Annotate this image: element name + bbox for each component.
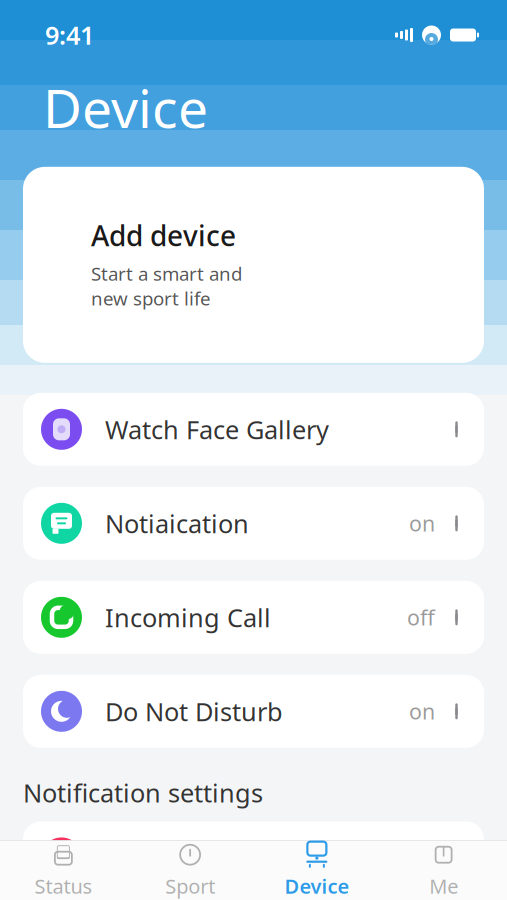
staticText: on	[409, 509, 435, 537]
staticText: Notiaication	[105, 506, 249, 540]
staticText: Incoming Call	[105, 600, 271, 634]
button[interactable]: Watch Face Gallery	[23, 393, 484, 466]
staticText: Start a smart and new sport life	[91, 261, 242, 311]
button[interactable]: Notiaication	[23, 487, 484, 560]
staticText: Do Not Disturb	[105, 694, 283, 728]
staticText: Watch Face Gallery	[105, 412, 329, 446]
button[interactable]: HR settings	[23, 821, 484, 894]
staticText: Sport	[165, 873, 215, 899]
staticText: Device	[43, 72, 208, 143]
staticText: HR settings	[105, 841, 242, 875]
staticText: on	[409, 697, 435, 725]
staticText: off	[407, 603, 435, 631]
button[interactable]: Add device	[23, 167, 484, 363]
button[interactable]: Status	[0, 841, 127, 900]
button[interactable]: Sport	[127, 841, 254, 900]
button[interactable]: Device	[253, 841, 380, 900]
button[interactable]: Me	[380, 841, 507, 900]
button[interactable]: Do Not Disturb	[23, 675, 484, 748]
staticText: Device	[284, 873, 349, 899]
button[interactable]: Incoming Call	[23, 581, 484, 654]
staticText: Notification settings	[23, 776, 263, 809]
staticText: 9:41	[45, 18, 94, 52]
staticText: Status	[34, 873, 92, 899]
staticText: Add device	[91, 217, 236, 254]
staticText: Me	[429, 873, 458, 899]
